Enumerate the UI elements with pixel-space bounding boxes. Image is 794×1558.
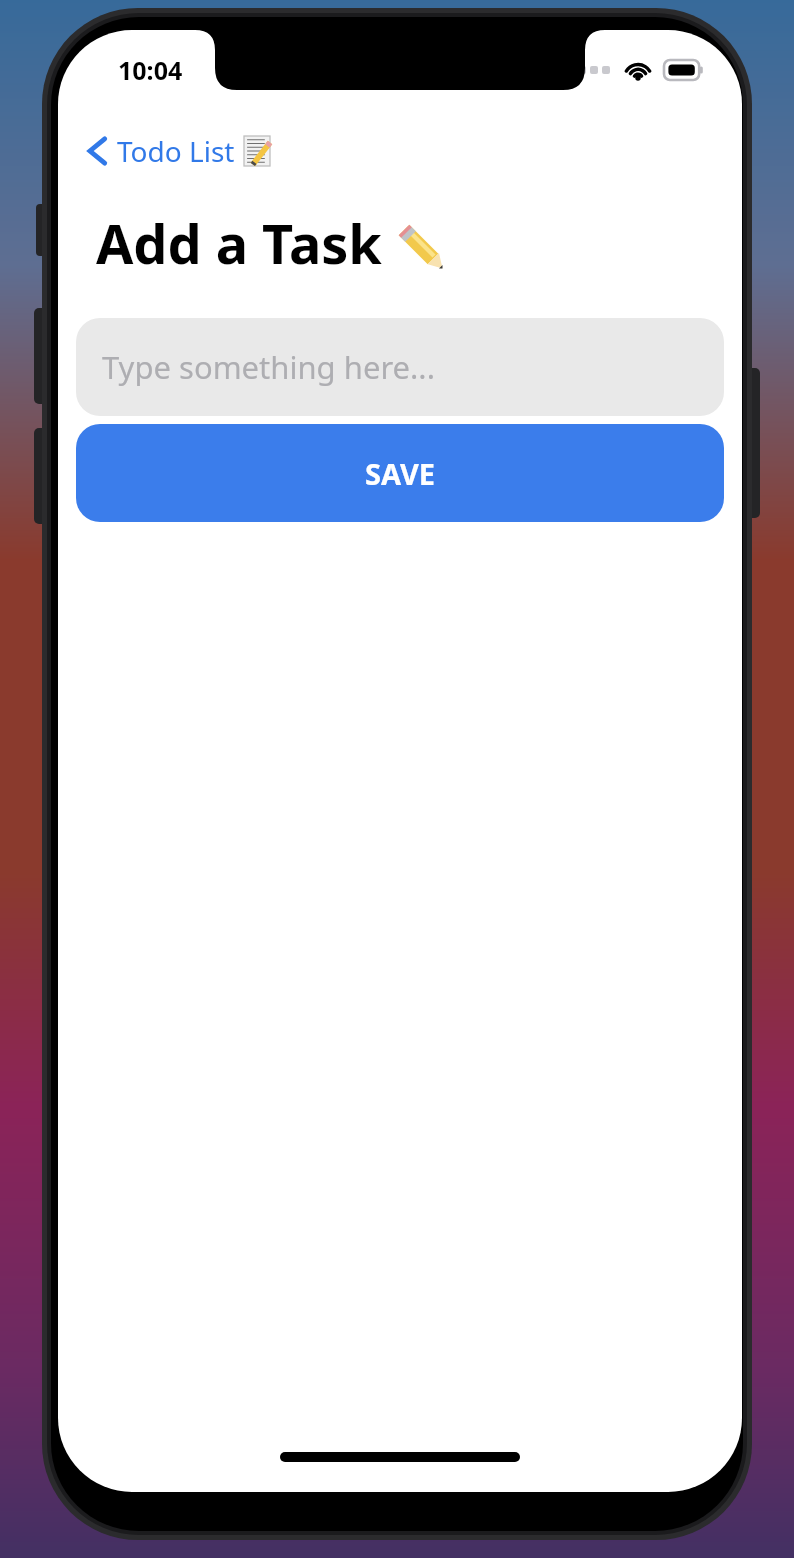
button[interactable]: Type something here...	[76, 318, 724, 416]
other: Back	[86, 134, 108, 168]
staticText: Add a Task	[96, 206, 382, 280]
button[interactable]: SAVE	[76, 424, 724, 522]
staticText: Todo List	[117, 132, 235, 170]
staticText: Type something here...	[102, 346, 435, 388]
staticText: SAVE	[365, 454, 435, 493]
staticText: 10:04	[118, 53, 183, 87]
button[interactable]: Back	[86, 128, 282, 174]
